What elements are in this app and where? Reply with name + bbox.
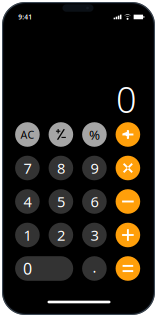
button[interactable]: Plus	[116, 223, 140, 247]
button[interactable]: Minus	[116, 189, 140, 214]
staticText: 4	[23, 192, 31, 211]
staticText: 9:41	[18, 13, 32, 21]
button[interactable]: 9	[82, 156, 107, 180]
button[interactable]: 1	[15, 223, 40, 247]
button[interactable]: 2	[49, 223, 73, 247]
button[interactable]: 7	[15, 156, 40, 180]
button[interactable]: 0	[15, 256, 73, 281]
staticText: 7	[23, 158, 31, 178]
staticText: 0	[23, 258, 32, 279]
button[interactable]: 3	[82, 223, 107, 247]
staticText: 3	[90, 225, 98, 245]
staticText: 2	[57, 225, 65, 245]
button[interactable]: 8	[49, 156, 73, 180]
staticText: 1	[23, 225, 31, 245]
button[interactable]: Multiply	[116, 156, 140, 180]
button[interactable]: .	[82, 256, 107, 281]
button[interactable]: Divide	[116, 122, 140, 147]
button[interactable]: 5	[49, 189, 73, 214]
button[interactable]: Plus Minus	[49, 122, 73, 147]
staticText: .	[92, 257, 96, 277]
button[interactable]: 6	[82, 189, 107, 214]
staticText: AC	[20, 127, 34, 142]
staticText: 6	[90, 192, 98, 211]
staticText: 0	[116, 75, 137, 123]
staticText: 9	[90, 158, 98, 178]
staticText: %	[89, 126, 100, 143]
button[interactable]: AC	[15, 122, 40, 147]
button[interactable]: Equals	[116, 256, 140, 281]
button[interactable]: 4	[15, 189, 40, 214]
staticText: 8	[57, 158, 65, 178]
button[interactable]: %	[82, 122, 107, 147]
staticText: 5	[57, 192, 65, 211]
